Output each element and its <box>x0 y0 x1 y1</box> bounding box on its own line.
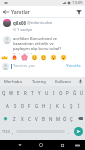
staticText: W <box>9 90 14 96</box>
button[interactable]: Shift <box>0 112 10 125</box>
staticText: F <box>28 103 31 109</box>
button[interactable]: O <box>57 86 64 99</box>
button[interactable]: . <box>66 125 72 138</box>
button[interactable]: blossom emoji <box>21 54 28 61</box>
button[interactable]: Space <box>15 125 66 138</box>
button[interactable]: Switch keyboard <box>73 141 82 150</box>
staticText: R <box>24 90 27 96</box>
staticText: K <box>56 103 59 109</box>
staticText: Paylaşılabilir <box>13 52 35 54</box>
staticText: Yanıtını yaz <box>13 63 35 69</box>
button[interactable]: P <box>64 86 71 99</box>
button[interactable]: R <box>22 86 29 99</box>
button[interactable]: emoji <box>50 54 57 61</box>
staticText: U <box>45 90 49 96</box>
staticText: H <box>42 103 46 109</box>
staticText: Merhaba <box>4 79 22 85</box>
staticText: 1 saniye <box>17 27 33 32</box>
staticText: Z <box>13 116 16 122</box>
staticText: J <box>50 103 52 109</box>
button[interactable]: E <box>15 86 22 99</box>
button[interactable]: K <box>54 99 61 112</box>
button[interactable]: Backspace <box>75 112 85 125</box>
button[interactable]: J <box>47 99 54 112</box>
staticText: Ş <box>70 103 73 109</box>
button[interactable]: U <box>43 86 50 99</box>
button[interactable]: M <box>54 112 61 125</box>
staticText: Yanıtlar <box>11 8 30 15</box>
button[interactable]: Ğ <box>71 86 78 99</box>
button[interactable]: crown emoji <box>1 54 8 61</box>
staticText: P <box>66 90 69 96</box>
button[interactable]: S <box>11 99 19 112</box>
staticText: N <box>49 116 53 122</box>
staticText: acefitlan Bonushood ve kazandıran etkinl… <box>13 36 70 51</box>
button[interactable]: G <box>33 99 40 112</box>
button[interactable]: F <box>26 99 33 112</box>
staticText: Kullanıcı <box>55 79 72 85</box>
staticText: 13:05 <box>72 0 83 6</box>
staticText: , <box>12 129 14 135</box>
staticText: O <box>59 90 63 96</box>
staticText: Ö <box>63 116 67 122</box>
staticText: T <box>31 90 34 96</box>
button[interactable]: emoji <box>60 54 67 61</box>
button[interactable]: I <box>50 86 57 99</box>
button[interactable]: B <box>40 112 47 125</box>
button[interactable]: V <box>33 112 40 125</box>
button[interactable]: Ü <box>78 86 85 99</box>
staticText: A <box>6 103 9 109</box>
staticText: qilx06 <box>13 20 26 26</box>
button[interactable]: Timeline settings <box>74 7 84 17</box>
button[interactable]: W <box>8 86 15 99</box>
staticText: D <box>21 103 25 109</box>
button[interactable]: Kullanıcı <box>51 77 76 86</box>
button[interactable]: Y <box>36 86 43 99</box>
staticText: L <box>63 103 66 109</box>
button[interactable]: C <box>26 112 33 125</box>
staticText: V <box>35 116 38 122</box>
button[interactable]: Ç <box>68 112 75 125</box>
button[interactable]: Back <box>15 140 25 150</box>
button[interactable]: Ş <box>68 99 75 112</box>
button[interactable]: ?123 <box>0 125 11 138</box>
staticText: Yanıtla <box>66 63 81 69</box>
button[interactable]: İ <box>75 99 82 112</box>
staticText: İ <box>78 103 80 109</box>
staticText: B <box>42 116 45 122</box>
staticText: E <box>17 90 20 96</box>
staticText: S <box>14 103 17 109</box>
staticText: I <box>53 90 55 96</box>
staticText: C <box>28 116 31 122</box>
button[interactable]: Q <box>0 86 8 99</box>
button[interactable]: T <box>29 86 36 99</box>
button[interactable]: Yanıtla <box>64 62 83 70</box>
staticText: . <box>68 129 70 135</box>
button[interactable]: Tureng <box>26 77 51 86</box>
staticText: G <box>35 103 39 109</box>
button[interactable]: Z <box>10 112 18 125</box>
staticText: X <box>21 116 24 122</box>
staticText: Y <box>38 90 41 96</box>
button[interactable]: Home <box>36 140 46 150</box>
button[interactable]: fire emoji <box>11 54 18 61</box>
staticText: ?123 <box>2 129 10 134</box>
button[interactable]: Send <box>74 127 83 136</box>
button[interactable]: D <box>19 99 26 112</box>
button[interactable]: H <box>40 99 47 112</box>
button[interactable]: Back <box>1 7 11 17</box>
button[interactable]: N <box>47 112 54 125</box>
button[interactable]: Ö <box>61 112 68 125</box>
button[interactable]: , <box>11 125 15 138</box>
button[interactable]: emoji <box>31 54 38 61</box>
button[interactable]: A <box>3 99 11 112</box>
button[interactable]: Merhaba <box>0 77 26 86</box>
button[interactable]: Voice input <box>76 77 85 86</box>
button[interactable]: L <box>61 99 68 112</box>
button[interactable]: X <box>18 112 26 125</box>
staticText: Ç <box>70 116 73 122</box>
staticText: Q <box>2 90 6 96</box>
button[interactable]: Recent apps <box>57 140 67 150</box>
staticText: Ü <box>80 90 84 96</box>
button[interactable]: emoji <box>40 54 47 61</box>
